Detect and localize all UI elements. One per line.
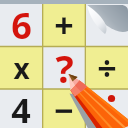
staticText: ? — [55, 42, 74, 94]
staticText: + — [54, 2, 74, 48]
staticText: − — [54, 87, 74, 128]
button[interactable]: Math quiz grid — [0, 0, 128, 128]
staticText: 4 — [11, 87, 31, 128]
staticText: ÷ — [97, 45, 117, 91]
staticText: 6 — [11, 1, 32, 50]
staticText: x — [13, 49, 30, 87]
